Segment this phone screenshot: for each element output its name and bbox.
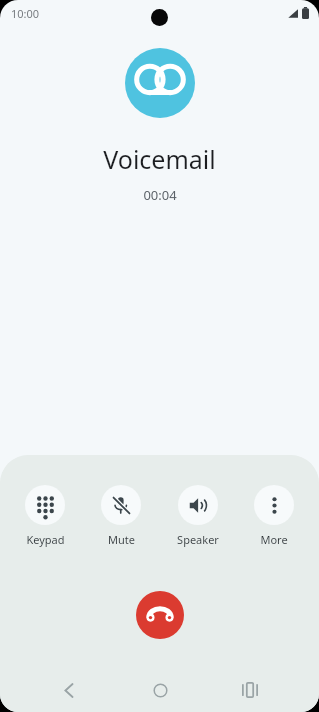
button[interactable]: End call — [136, 591, 184, 639]
button[interactable]: Keypad — [13, 484, 77, 548]
button[interactable]: Recents — [228, 668, 272, 712]
button[interactable]: More — [242, 484, 306, 548]
staticText: 00:04 — [143, 186, 177, 204]
staticText: Keypad — [26, 532, 65, 547]
button[interactable]: Back — [47, 668, 91, 712]
staticText: Mute — [108, 532, 135, 547]
staticText: Voicemail — [103, 142, 216, 176]
staticText: 10:00 — [11, 6, 40, 21]
staticText: Speaker — [177, 532, 219, 547]
staticText: More — [260, 532, 288, 547]
button[interactable]: Mute — [89, 484, 153, 548]
button[interactable]: Speaker — [166, 484, 230, 548]
button[interactable]: Home — [138, 668, 182, 712]
